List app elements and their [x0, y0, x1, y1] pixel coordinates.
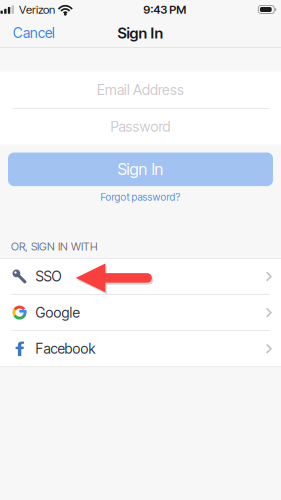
staticText: Cancel	[13, 24, 55, 41]
staticText: Forgot password?	[100, 191, 180, 203]
staticText: Sign In	[117, 160, 163, 179]
staticText: OR, SIGN IN WITH	[11, 240, 98, 253]
button[interactable]: SSO	[0, 259, 281, 294]
staticText: 9:43 PM	[143, 3, 186, 16]
staticText: Google	[35, 304, 79, 321]
staticText: Password	[110, 118, 170, 135]
staticText: SSO	[35, 268, 61, 285]
button[interactable]: Forgot password?	[0, 186, 281, 208]
staticText: Facebook	[35, 340, 95, 357]
button[interactable]: Google	[0, 295, 281, 330]
staticText: Email Address	[97, 81, 184, 98]
staticText: Sign In	[117, 24, 163, 42]
button[interactable]: Cancel	[0, 19, 68, 47]
staticText: Verizon	[19, 3, 55, 16]
button[interactable]: Facebook	[0, 331, 281, 366]
button[interactable]: Sign In	[8, 152, 273, 186]
